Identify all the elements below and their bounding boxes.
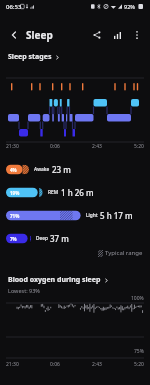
button[interactable]: Share bbox=[87, 25, 107, 45]
button[interactable]: 71% bbox=[0, 204, 150, 227]
staticText: 92% bbox=[124, 3, 135, 10]
staticText: Typical range bbox=[105, 249, 143, 257]
staticText: Lowest: 93% bbox=[8, 287, 40, 294]
staticText: 0:06 bbox=[50, 361, 60, 368]
staticText: 21:30 bbox=[6, 143, 19, 150]
staticText: 5 h 17 m bbox=[100, 210, 133, 221]
button[interactable]: Statistics bbox=[107, 25, 127, 45]
button[interactable]: Sleep stages bbox=[0, 50, 68, 64]
staticText: 21:30 bbox=[6, 361, 19, 368]
staticText: Deep bbox=[36, 235, 48, 242]
staticText: Blood oxygen during sleep bbox=[8, 275, 101, 285]
staticText: 7% bbox=[10, 236, 17, 242]
button[interactable]: Blood oxygen during sleep bbox=[0, 272, 117, 285]
staticText: Light bbox=[86, 212, 98, 219]
staticText: 06:53 bbox=[6, 3, 22, 11]
staticText: 2:43 bbox=[92, 143, 102, 150]
staticText: 2:43 bbox=[92, 361, 102, 368]
staticText: 100% bbox=[131, 295, 144, 302]
button[interactable]: More options bbox=[127, 25, 147, 45]
button[interactable]: 7% bbox=[0, 227, 150, 250]
button[interactable]: Back bbox=[3, 24, 25, 46]
staticText: 75% bbox=[134, 348, 144, 355]
staticText: Awake bbox=[34, 166, 50, 173]
staticText: 23 m bbox=[52, 164, 71, 175]
staticText: 37 m bbox=[50, 233, 69, 244]
staticText: 5:20 bbox=[134, 143, 144, 150]
staticText: REM bbox=[48, 189, 59, 196]
staticText: 0:06 bbox=[50, 143, 60, 150]
staticText: 71% bbox=[10, 213, 20, 219]
staticText: 5:20 bbox=[134, 361, 144, 368]
button[interactable]: 4% bbox=[0, 158, 150, 181]
staticText: Sleep bbox=[26, 28, 53, 42]
staticText: 4% bbox=[10, 167, 17, 173]
staticText: 1 h 26 m bbox=[61, 187, 94, 198]
staticText: 19% bbox=[10, 190, 20, 196]
button[interactable]: 19% bbox=[0, 181, 150, 204]
staticText: Sleep stages bbox=[8, 52, 52, 62]
